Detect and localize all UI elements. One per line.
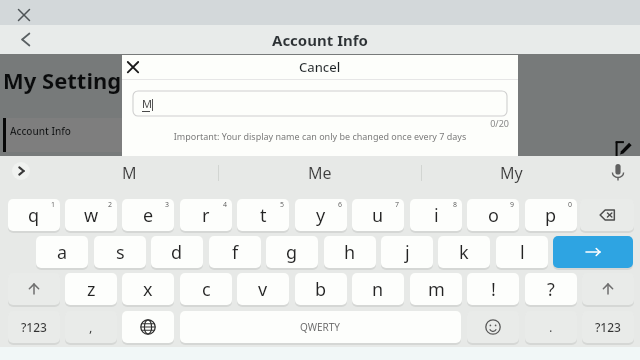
button[interactable]: c (180, 273, 232, 305)
button[interactable]: b (295, 273, 347, 305)
button[interactable]: x (122, 273, 174, 305)
staticText: e (143, 203, 154, 228)
button[interactable]: More suggestions (12, 162, 30, 180)
button[interactable]: ?123 (8, 311, 60, 343)
staticText: QWERTY (300, 320, 341, 334)
button[interactable]: My (422, 154, 601, 191)
staticText: 7 (395, 200, 400, 210)
button[interactable]: Close (9, 0, 39, 25)
button[interactable]: Back (9, 25, 39, 54)
button[interactable]: r (180, 199, 232, 231)
button[interactable]: u (352, 199, 404, 231)
staticText: 9 (510, 200, 515, 210)
button[interactable]: Period (525, 311, 577, 343)
button[interactable]: p (525, 199, 577, 231)
staticText: ? (547, 277, 555, 302)
staticText: k (459, 240, 469, 265)
staticText: ?123 (21, 319, 47, 335)
staticText: v (258, 277, 268, 302)
button[interactable]: v (237, 273, 289, 305)
button[interactable]: Space (180, 311, 461, 343)
staticText: f (232, 240, 239, 265)
staticText: g (286, 240, 298, 265)
button[interactable]: M (40, 154, 218, 191)
button[interactable]: m (410, 273, 462, 305)
staticText: w (84, 203, 99, 228)
staticText: y (316, 203, 326, 228)
staticText: Cancel (299, 58, 341, 76)
staticText: i (434, 203, 439, 228)
staticText: . (549, 318, 553, 336)
staticText: M (122, 162, 137, 184)
button[interactable]: t (237, 199, 289, 231)
staticText: 0/20 (122, 117, 509, 129)
button[interactable]: g (266, 236, 318, 268)
staticText: 6 (338, 200, 343, 210)
button[interactable]: q (8, 199, 60, 231)
staticText: 1 (51, 200, 56, 210)
staticText: c (202, 277, 211, 302)
staticText: n (372, 277, 384, 302)
button[interactable]: ?123 (582, 311, 634, 343)
button[interactable]: w (65, 199, 117, 231)
staticText: h (344, 240, 356, 265)
staticText: Important: Your display name can only be… (122, 130, 518, 142)
button[interactable]: s (94, 236, 146, 268)
button[interactable]: a (36, 236, 88, 268)
staticText: l (520, 240, 525, 265)
button[interactable]: z (65, 273, 117, 305)
staticText: o (488, 203, 499, 228)
staticText: Me (308, 162, 332, 184)
staticText: My (500, 162, 523, 184)
staticText: t (260, 203, 267, 228)
button[interactable]: n (352, 273, 404, 305)
staticText: b (315, 277, 327, 302)
staticText: Account Info (10, 124, 71, 138)
staticText: 5 (280, 200, 285, 210)
staticText: 3 (165, 200, 170, 210)
staticText: r (202, 203, 210, 228)
staticText: M (142, 96, 152, 111)
staticText: Account Info (272, 30, 368, 50)
button[interactable]: Emoji (467, 311, 519, 343)
staticText: ?123 (595, 319, 621, 335)
staticText: m (428, 277, 445, 302)
button[interactable]: Shift (8, 273, 60, 305)
button[interactable]: e (122, 199, 174, 231)
staticText: ! (491, 277, 496, 302)
button[interactable]: Change language (122, 311, 174, 343)
button[interactable]: Enter (553, 236, 633, 268)
button[interactable]: Close dialog (121, 55, 145, 79)
staticText: a (57, 240, 68, 265)
button[interactable]: Shift (582, 273, 634, 305)
button[interactable]: i (410, 199, 462, 231)
staticText: , (89, 318, 93, 336)
button[interactable]: y (295, 199, 347, 231)
button[interactable]: Account Info (3, 118, 293, 152)
staticText: 0 (568, 200, 573, 210)
button[interactable]: l (496, 236, 548, 268)
staticText: d (171, 240, 183, 265)
staticText: 4 (223, 200, 228, 210)
button[interactable]: f (209, 236, 261, 268)
button[interactable]: Edit (612, 138, 634, 160)
button[interactable]: ? (525, 273, 577, 305)
staticText: 2 (108, 200, 113, 210)
staticText: j (405, 240, 410, 265)
button[interactable]: h (324, 236, 376, 268)
button[interactable]: d (151, 236, 203, 268)
button[interactable]: Voice input (606, 160, 630, 184)
button[interactable]: j (381, 236, 433, 268)
staticText: q (28, 203, 40, 228)
staticText: z (87, 277, 96, 302)
button[interactable]: Me (219, 154, 421, 191)
button[interactable]: k (438, 236, 490, 268)
button[interactable]: o (467, 199, 519, 231)
staticText: My Settings (3, 65, 133, 95)
staticText: x (143, 277, 153, 302)
button[interactable]: ! (467, 273, 519, 305)
staticText: s (116, 240, 125, 265)
staticText: p (545, 203, 557, 228)
button[interactable]: Backspace (580, 199, 634, 231)
button[interactable]: Comma (65, 311, 117, 343)
